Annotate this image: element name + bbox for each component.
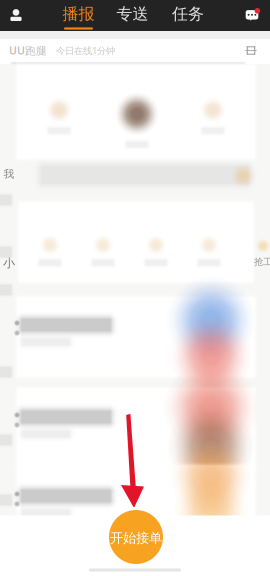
button[interactable]: 开始接单 bbox=[106, 507, 166, 567]
staticText: UU跑腿 bbox=[9, 43, 47, 58]
staticText: 我 bbox=[3, 167, 14, 180]
staticText: 任务 bbox=[172, 4, 204, 24]
staticText: 今日在线1分钟 bbox=[47, 44, 115, 57]
button[interactable]: Messages bbox=[237, 0, 267, 31]
button[interactable]: Profile bbox=[1, 0, 31, 31]
staticText: 开始接单 bbox=[110, 530, 162, 546]
staticText: 抢工 bbox=[254, 256, 270, 268]
button[interactable]: 专送 bbox=[108, 0, 156, 29]
staticText: 播报 bbox=[62, 4, 94, 24]
button[interactable]: 任务 bbox=[164, 0, 212, 29]
staticText: 专送 bbox=[116, 4, 148, 24]
button[interactable]: Scan bbox=[241, 40, 261, 60]
staticText: 小 bbox=[3, 256, 15, 270]
button[interactable]: 播报 bbox=[54, 0, 102, 31]
